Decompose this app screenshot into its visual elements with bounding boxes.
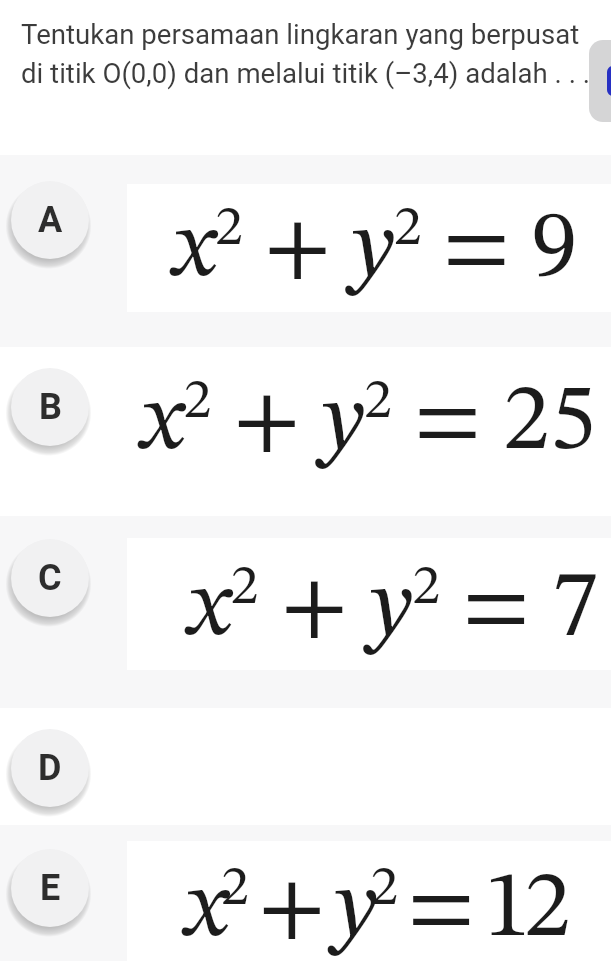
button[interactable] <box>589 40 611 122</box>
staticText: B <box>39 386 62 428</box>
button[interactable]: x2 + y2 = 7 <box>0 516 611 708</box>
button[interactable]: D <box>0 708 611 825</box>
staticText: x2 + y2 = 7 <box>188 560 599 656</box>
staticText: C <box>38 557 62 599</box>
button[interactable]: x2 + y2 = 9 <box>0 155 611 347</box>
staticText: x2 + y2 = 9 <box>173 201 577 297</box>
staticText: Tentukan persamaan lingkaran yang berpus… <box>21 18 591 90</box>
button[interactable]: x2 + y2 = 12 <box>0 825 611 961</box>
staticText: D <box>38 747 62 789</box>
button[interactable]: x2 + y2 = 25 <box>0 347 611 516</box>
staticText: x2 + y2 = 25 <box>141 374 596 470</box>
staticText: E <box>40 867 61 909</box>
staticText: x2 + y2 = 12 <box>185 861 565 957</box>
staticText: A <box>38 199 63 241</box>
